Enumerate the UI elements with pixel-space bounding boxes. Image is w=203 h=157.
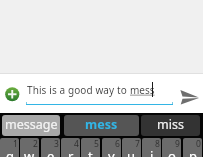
button[interactable]: 5: [81, 138, 100, 157]
button[interactable]: Send: [176, 81, 202, 107]
button[interactable]: 7: [122, 138, 141, 157]
staticText: miss: [157, 116, 184, 133]
button[interactable]: message: [2, 115, 60, 136]
button[interactable]: 2: [20, 138, 39, 157]
button[interactable]: miss: [141, 115, 200, 136]
staticText: message: [5, 116, 58, 133]
button[interactable]: mess: [64, 115, 139, 136]
staticText: 5: [94, 138, 99, 150]
staticText: mess: [130, 83, 155, 97]
staticText: 3: [54, 138, 59, 150]
button[interactable]: 0: [183, 138, 202, 157]
button[interactable]: 3: [41, 138, 60, 157]
staticText: 8: [155, 138, 160, 150]
staticText: 2: [33, 138, 38, 150]
button[interactable]: 9: [162, 138, 181, 157]
staticText: 0: [196, 138, 201, 150]
staticText: o: [168, 147, 176, 157]
button[interactable]: 4: [61, 138, 80, 157]
staticText: 6: [115, 138, 120, 150]
staticText: This is a good way to: [27, 83, 130, 97]
staticText: q: [6, 147, 14, 157]
staticText: t: [88, 147, 93, 157]
staticText: e: [47, 147, 55, 157]
staticText: mess: [85, 116, 118, 133]
staticText: 9: [175, 138, 180, 150]
staticText: p: [189, 147, 197, 157]
button[interactable]: 6: [102, 138, 121, 157]
staticText: r: [68, 147, 74, 157]
staticText: y: [108, 147, 115, 157]
staticText: 1: [13, 138, 18, 150]
staticText: 7: [135, 138, 140, 150]
button[interactable]: 1: [0, 138, 19, 157]
button[interactable]: 8: [142, 138, 161, 157]
staticText: w: [24, 147, 35, 157]
staticText: 4: [74, 138, 79, 150]
staticText: u: [127, 147, 136, 157]
staticText: i: [150, 147, 154, 157]
button[interactable]: Add attachment: [2, 83, 23, 104]
